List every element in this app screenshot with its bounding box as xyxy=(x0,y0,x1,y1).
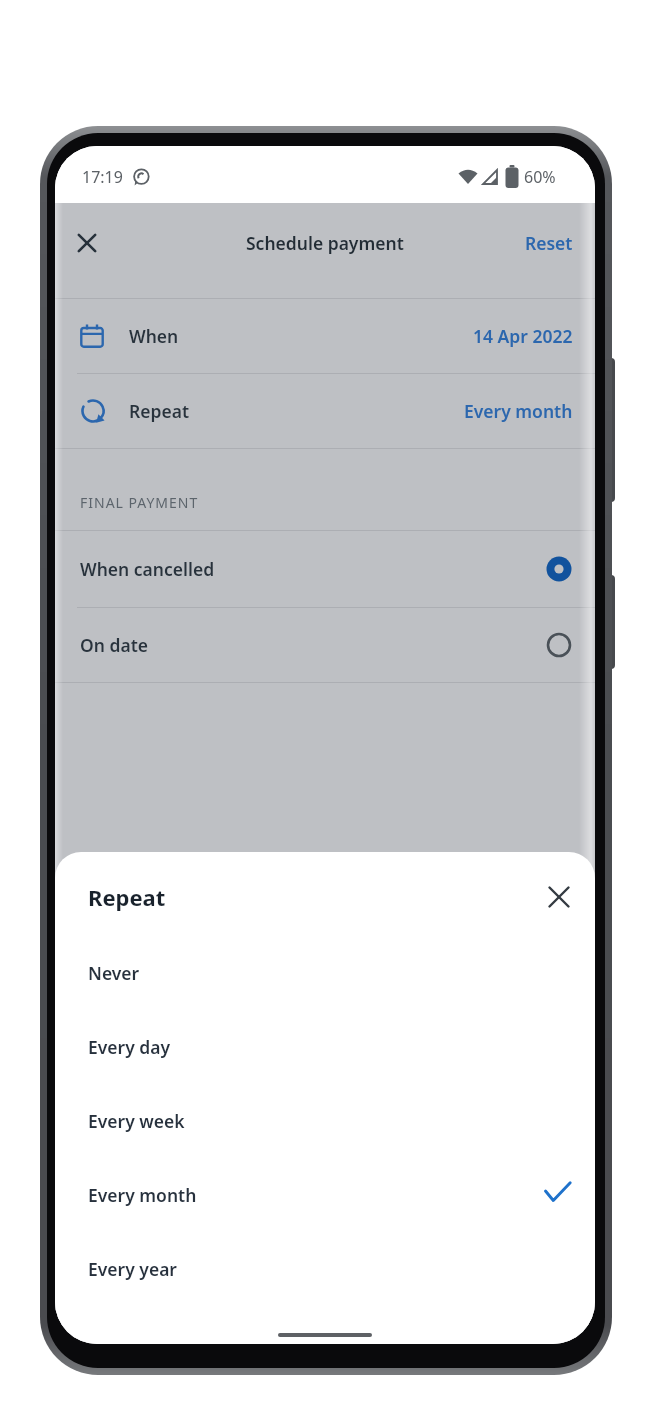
staticText: Every month xyxy=(464,399,573,423)
button[interactable]: Reset xyxy=(525,231,573,255)
staticText: Schedule payment xyxy=(246,231,404,255)
button[interactable]: Every year xyxy=(55,1232,595,1306)
button[interactable]: Repeat xyxy=(55,374,595,448)
staticText: Every day xyxy=(88,1035,171,1059)
staticText: 17:19 xyxy=(82,166,123,188)
button[interactable]: When xyxy=(55,299,595,373)
staticText: Reset xyxy=(525,231,573,255)
staticText: 60% xyxy=(524,166,556,188)
button[interactable]: Every day xyxy=(55,1010,595,1084)
button[interactable] xyxy=(547,885,571,909)
button[interactable]: On date xyxy=(55,608,595,682)
staticText: On date xyxy=(80,633,149,657)
staticText: Repeat xyxy=(88,882,166,912)
button[interactable]: When cancelled xyxy=(55,531,595,607)
staticText: Every year xyxy=(88,1257,177,1281)
staticText: Every month xyxy=(88,1183,197,1207)
staticText: Every week xyxy=(88,1109,185,1133)
staticText: 14 Apr 2022 xyxy=(473,324,573,348)
button[interactable] xyxy=(78,234,96,252)
staticText: Never xyxy=(88,961,140,985)
staticText: FINAL PAYMENT xyxy=(80,493,199,512)
staticText: Repeat xyxy=(129,399,190,423)
button[interactable]: Every week xyxy=(55,1084,595,1158)
button[interactable]: Never xyxy=(55,936,595,1010)
staticText: When xyxy=(129,324,179,348)
button[interactable]: Every month xyxy=(55,1158,595,1232)
staticText: When cancelled xyxy=(80,557,215,581)
